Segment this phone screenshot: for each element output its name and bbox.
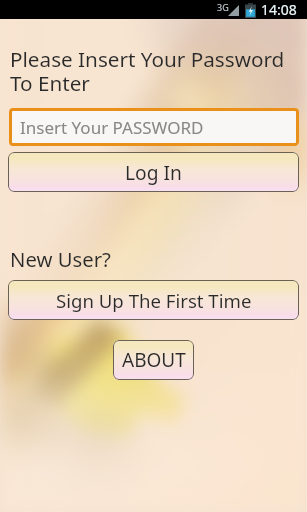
staticText: Please Insert Your Password To Enter	[10, 45, 285, 98]
staticText: 14:08	[261, 0, 297, 19]
staticText: Log In	[125, 159, 182, 185]
button[interactable]: Sign Up The First Time	[8, 280, 299, 320]
staticText: ABOUT	[122, 347, 186, 373]
staticText: New User?	[10, 245, 111, 273]
staticText: Sign Up The First Time	[56, 288, 252, 313]
staticText: Insert Your PASSWORD	[20, 116, 204, 139]
button[interactable]: Insert Your PASSWORD	[9, 108, 299, 146]
button[interactable]: ABOUT	[113, 340, 194, 380]
staticText: 3G	[217, 1, 229, 13]
button[interactable]: Log In	[8, 152, 299, 192]
